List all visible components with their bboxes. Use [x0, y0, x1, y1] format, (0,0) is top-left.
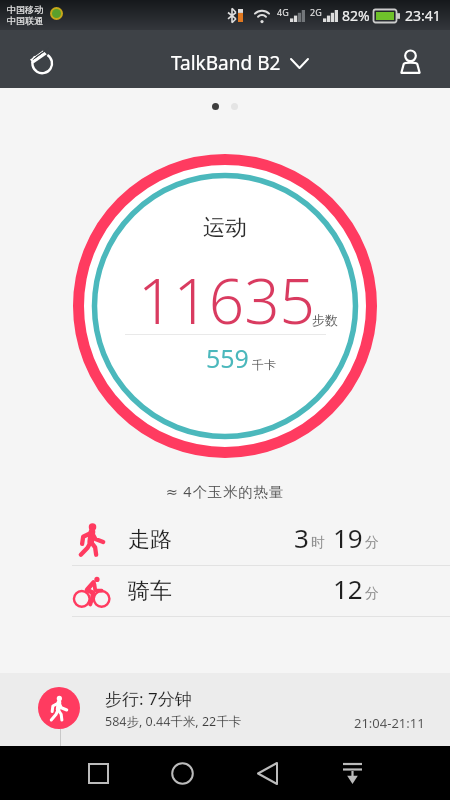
staticText: 12 — [333, 571, 363, 606]
button[interactable]: Home — [158, 749, 206, 797]
staticText: 分 — [365, 534, 379, 552]
staticText: 中国移动 — [7, 4, 43, 15]
staticText: 584步, 0.44千米, 22千卡 — [105, 713, 242, 730]
button[interactable]: Profile — [386, 38, 434, 86]
staticText: 运动 — [73, 214, 377, 242]
button[interactable]: Back — [243, 749, 291, 797]
staticText: 559 — [206, 341, 249, 375]
staticText: 2G — [310, 6, 322, 18]
staticText: 步数 — [312, 312, 338, 328]
staticText: 23:41 — [405, 6, 441, 25]
button[interactable]: 步行: 7分钟 — [0, 673, 450, 746]
button[interactable]: 走路 — [0, 515, 450, 565]
staticText: 分 — [365, 585, 379, 603]
staticText: 21:04-21:11 — [354, 714, 425, 732]
staticText: 走路 — [128, 526, 172, 554]
staticText: 82% — [342, 6, 370, 25]
button[interactable]: TalkBand B2 — [171, 50, 308, 76]
staticText: 19 — [333, 520, 363, 555]
staticText: TalkBand B2 — [171, 50, 281, 76]
button[interactable]: Recents — [74, 749, 122, 797]
staticText: 11635 — [138, 258, 316, 342]
staticText: 3 — [294, 520, 309, 555]
staticText: 骑车 — [128, 577, 172, 605]
staticText: 4G — [277, 6, 289, 18]
staticText: 步行: 7分钟 — [105, 687, 192, 710]
button[interactable]: Device — [17, 37, 65, 85]
staticText: ≈ 4个玉米的热量 — [0, 481, 450, 501]
staticText: 中国联通 — [7, 15, 43, 26]
button[interactable]: Hide navigation bar — [328, 749, 376, 797]
staticText: 千卡 — [252, 357, 276, 372]
staticText: 时 — [311, 534, 325, 552]
button[interactable]: 骑车 — [0, 566, 450, 616]
